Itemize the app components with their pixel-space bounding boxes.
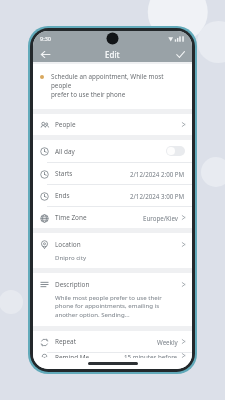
staticText: Ends bbox=[55, 191, 70, 200]
button[interactable]: Starts bbox=[33, 163, 192, 184]
button[interactable]: Remind Me bbox=[33, 353, 192, 358]
button[interactable]: Location bbox=[33, 233, 192, 268]
button[interactable]: Ends bbox=[33, 185, 192, 206]
staticText: 15 minutes before bbox=[124, 353, 178, 358]
button[interactable]: Save bbox=[172, 46, 188, 62]
button[interactable]: Schedule an appointment, While most peop… bbox=[33, 64, 192, 109]
staticText: Europe/Kiev bbox=[143, 214, 178, 222]
staticText: Repeat bbox=[55, 337, 77, 346]
staticText: Weekly bbox=[157, 338, 178, 346]
button[interactable]: Back bbox=[37, 46, 53, 62]
button[interactable]: People bbox=[33, 114, 192, 135]
staticText: Location bbox=[55, 240, 81, 249]
staticText: Starts bbox=[55, 169, 73, 178]
staticText: Description bbox=[55, 280, 90, 289]
staticText: All day bbox=[55, 147, 75, 156]
staticText: Dnipro city bbox=[55, 253, 87, 261]
staticText: Schedule an appointment, While most peop… bbox=[51, 72, 183, 99]
button[interactable]: Repeat bbox=[33, 331, 192, 352]
button[interactable]: All day bbox=[33, 140, 192, 162]
staticText: 2/12/2024 2:00 PM bbox=[130, 170, 185, 178]
button[interactable]: Time Zone bbox=[33, 207, 192, 228]
staticText: 9:30 bbox=[40, 35, 51, 42]
staticText: People bbox=[55, 120, 76, 129]
staticText: While most people prefer to use their ph… bbox=[55, 293, 162, 319]
staticText: Time Zone bbox=[55, 213, 87, 222]
staticText: 2/12/2024 3:00 PM bbox=[130, 192, 185, 200]
staticText: Edit bbox=[105, 49, 120, 60]
button[interactable]: Description bbox=[33, 273, 192, 326]
staticText: Remind Me bbox=[55, 353, 90, 358]
